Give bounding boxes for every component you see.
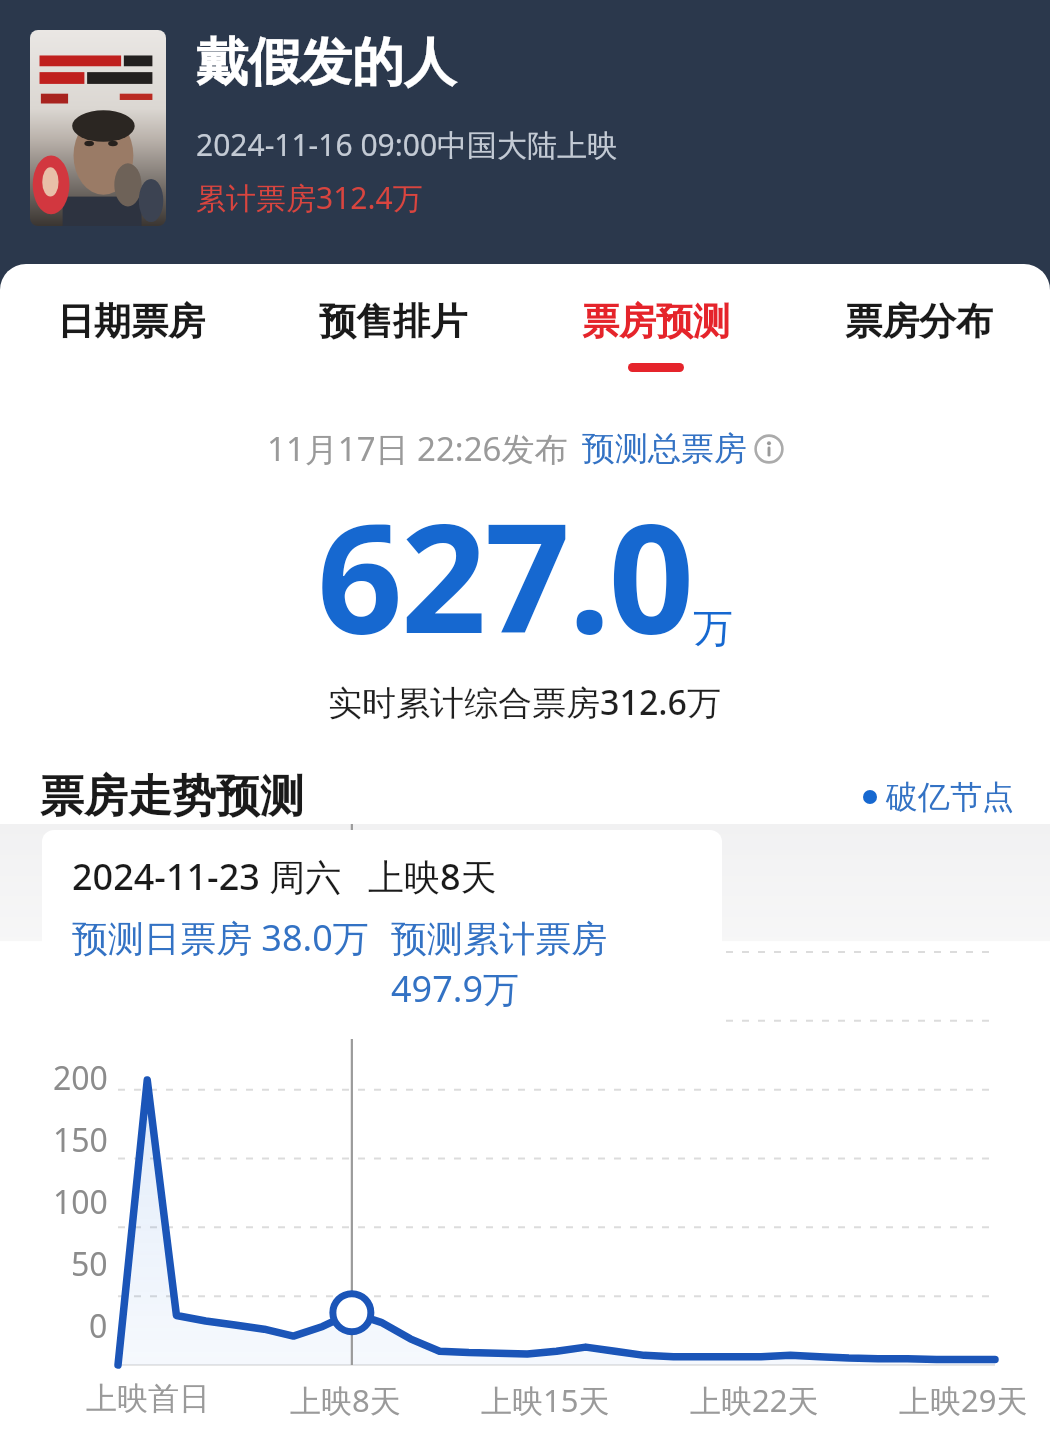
button[interactable]: 电影海报 bbox=[30, 30, 166, 226]
staticText: 上映29天 bbox=[899, 1379, 1028, 1421]
button[interactable]: 预测总票房 bbox=[582, 428, 784, 470]
staticText: 200 bbox=[53, 1056, 108, 1100]
button[interactable]: 预售排片 bbox=[262, 264, 524, 384]
staticText: 预测累计票房 497.9万 bbox=[391, 913, 702, 1013]
staticText: 627.0 bbox=[317, 473, 693, 677]
button[interactable]: 破亿节点 bbox=[863, 777, 1014, 817]
staticText: 戴假发的人 bbox=[196, 30, 456, 96]
staticText: 上映8天 bbox=[290, 1379, 401, 1421]
staticText: 11月17日 22:26发布 bbox=[267, 426, 568, 471]
staticText: 上映22天 bbox=[690, 1379, 819, 1421]
button[interactable]: 票房预测 bbox=[524, 264, 787, 384]
other: 预测总票房说明 bbox=[754, 434, 784, 464]
staticText: 日期票房 bbox=[57, 298, 205, 345]
staticText: 上映8天 bbox=[368, 852, 497, 901]
staticText: 0 bbox=[89, 1304, 108, 1348]
staticText: 预测日票房 38.0万 bbox=[72, 913, 369, 962]
staticText: 预测总票房 bbox=[582, 428, 747, 470]
staticText: 150 bbox=[53, 1118, 108, 1162]
button[interactable]: 日期票房 bbox=[0, 264, 262, 384]
staticText: 300 bbox=[53, 932, 108, 976]
staticText: 上映15天 bbox=[481, 1379, 610, 1421]
staticText: 票房预测 bbox=[582, 298, 730, 345]
button[interactable]: 票房分布 bbox=[787, 264, 1050, 384]
staticText: 累计票房312.4万 bbox=[196, 177, 423, 218]
staticText: 预售排片 bbox=[319, 298, 467, 345]
staticText: 万 bbox=[693, 603, 733, 653]
staticText: 票房分布 bbox=[845, 298, 993, 345]
staticText: 破亿节点 bbox=[886, 777, 1014, 817]
button[interactable]: 2024-11-23 周六 bbox=[42, 830, 722, 1039]
staticText: 2024-11-16 09:00中国大陆上映 bbox=[196, 124, 618, 165]
staticText: 50 bbox=[71, 1242, 108, 1286]
staticText: 2024-11-23 周六 bbox=[72, 852, 342, 901]
staticText: 实时累计综合票房312.6万 bbox=[328, 679, 722, 725]
staticText: 100 bbox=[53, 1180, 108, 1224]
staticText: 上映首日 bbox=[86, 1379, 210, 1418]
staticText: 票房走势预测 bbox=[40, 769, 304, 824]
